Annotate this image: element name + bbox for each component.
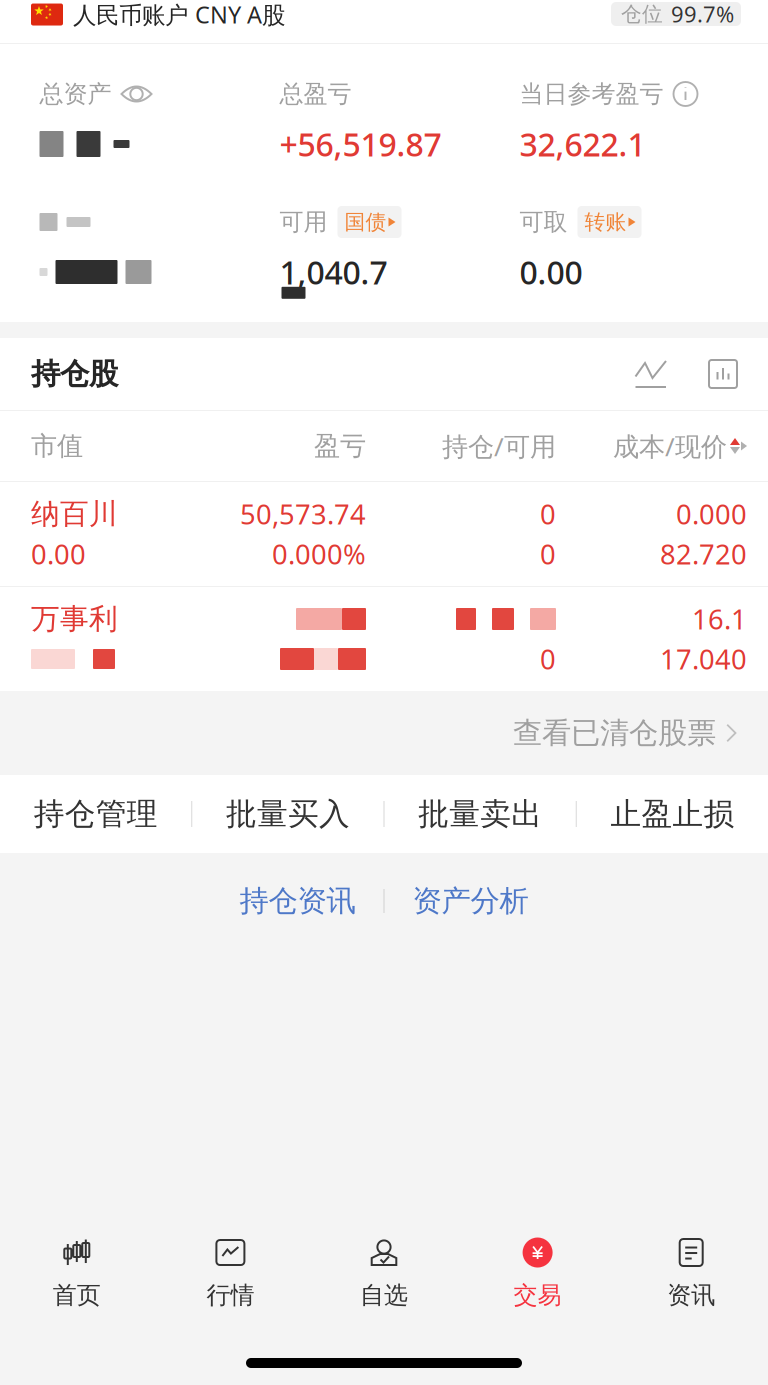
staticText: 市值 (31, 429, 83, 462)
staticText: 交易 (514, 1280, 562, 1310)
staticText: 资产分析 (412, 883, 528, 919)
staticText: 0.000 (676, 495, 747, 533)
staticText: 99.7% (671, 0, 734, 29)
staticText: 17.040 (660, 640, 747, 678)
button[interactable]: 交易 (461, 1233, 614, 1314)
staticText: 32,622.1 (519, 122, 645, 166)
button[interactable]: 自选 (307, 1233, 461, 1314)
staticText: 0 (540, 535, 556, 573)
staticText: 82.720 (660, 535, 747, 573)
button[interactable]: 持仓分布 (667, 360, 737, 388)
staticText: 可用 (279, 207, 327, 237)
staticText: 首页 (53, 1280, 101, 1310)
staticText: 转账 (584, 209, 626, 235)
button[interactable]: 资产分析 (384, 873, 556, 929)
button[interactable]: 转账 (577, 206, 641, 238)
button[interactable]: 止盈止损 (577, 775, 768, 853)
button[interactable]: 查看已清仓股票 (482, 695, 768, 771)
staticText: 批量卖出 (418, 795, 542, 833)
button[interactable]: 仓位 (611, 0, 741, 29)
staticText: 持仓股 (31, 355, 118, 392)
staticText: 自选 (360, 1280, 408, 1310)
staticText: 0.00 (519, 250, 582, 294)
staticText: 1,040.7 (279, 250, 387, 294)
button[interactable]: 行情 (154, 1233, 307, 1314)
button[interactable]: 批量卖出 (384, 775, 576, 853)
staticText: 查看已清仓股票 (513, 715, 716, 751)
staticText: 持仓资讯 (239, 883, 355, 919)
button[interactable]: 显示或隐藏资产 (120, 82, 152, 105)
staticText: 人民币账户 CNY A股 (73, 0, 285, 30)
button[interactable]: 说明 (672, 81, 698, 107)
button[interactable]: 分时走势 (635, 360, 667, 388)
button[interactable]: 首页 (0, 1233, 154, 1314)
button[interactable]: 资讯 (614, 1233, 768, 1314)
staticText: 成本/现价 (613, 428, 727, 464)
staticText: 0 (540, 640, 556, 678)
button[interactable]: 人民币账户 CNY A股 (31, 0, 285, 30)
staticText: 万事利 (31, 601, 118, 637)
staticText: 当日参考盈亏 (519, 79, 663, 109)
button[interactable]: 批量买入 (192, 775, 383, 853)
staticText: 0.00 (31, 535, 86, 573)
button[interactable]: 持仓管理 (0, 775, 191, 853)
staticText: 盈亏 (314, 429, 366, 462)
staticText: 国债 (344, 209, 386, 235)
staticText: 资讯 (667, 1280, 715, 1310)
staticText: 行情 (206, 1280, 254, 1310)
staticText: 纳百川 (31, 496, 118, 532)
staticText: 可取 (519, 207, 567, 237)
staticText: 持仓/可用 (442, 428, 556, 464)
staticText: 止盈止损 (610, 795, 734, 833)
staticText: 50,573.74 (240, 495, 366, 533)
staticText: 仓位 (621, 1, 663, 27)
staticText: 16.1 (692, 600, 747, 638)
staticText: 0.000% (272, 535, 366, 573)
staticText: 批量买入 (226, 795, 350, 833)
staticText: +56,519.87 (279, 122, 441, 166)
button[interactable]: 国债 (337, 206, 401, 238)
staticText: 总资产 (39, 79, 111, 109)
button[interactable]: 持仓资讯 (211, 873, 383, 929)
staticText: 总盈亏 (279, 79, 351, 109)
staticText: 持仓管理 (34, 795, 158, 833)
staticText: 0 (540, 495, 556, 533)
